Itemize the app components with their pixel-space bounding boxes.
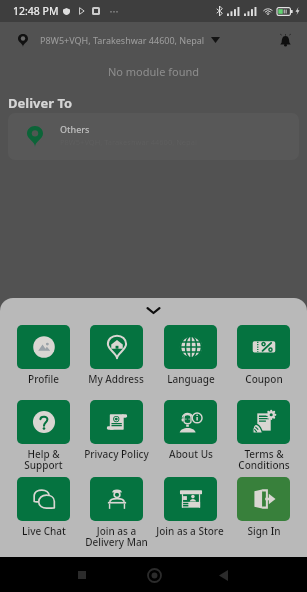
button[interactable]: About Us xyxy=(164,400,217,461)
button[interactable]: Back xyxy=(209,561,237,589)
button[interactable]: Others xyxy=(8,113,299,160)
button[interactable]: Join as a Store xyxy=(156,477,224,538)
staticText: Coupon xyxy=(245,372,283,386)
staticText: Profile xyxy=(28,372,59,386)
staticText: About Us xyxy=(169,447,213,461)
staticText: Others xyxy=(60,123,90,135)
staticText: Live Chat xyxy=(22,524,66,538)
staticText: Terms & Conditions xyxy=(238,447,290,472)
staticText: Join as a Store xyxy=(156,524,224,538)
staticText: No module found xyxy=(0,64,307,79)
button[interactable]: Profile xyxy=(17,325,70,386)
staticText: 12:48 PM xyxy=(13,4,59,18)
button[interactable]: Recents xyxy=(68,561,96,589)
button[interactable]: Sign In xyxy=(237,477,290,538)
staticText: My Address xyxy=(88,372,144,386)
staticText: Sign In xyxy=(247,524,281,538)
button[interactable]: Live Chat xyxy=(17,477,70,538)
button[interactable]: Join as a Delivery Man xyxy=(85,477,148,549)
staticText: P8W5+VQH, Tarakeshwar 44600, Nepal xyxy=(40,34,205,46)
button[interactable]: Language xyxy=(164,325,217,386)
button[interactable]: My Address xyxy=(88,325,144,386)
button[interactable]: Help & Support xyxy=(17,400,70,472)
button[interactable]: Notifications xyxy=(273,28,297,52)
staticText: Language xyxy=(167,372,215,386)
button[interactable]: Terms & Conditions xyxy=(237,400,290,472)
staticText: Privacy Policy xyxy=(84,447,149,461)
staticText: Deliver To xyxy=(8,94,73,112)
staticText: Join as a Delivery Man xyxy=(85,524,148,549)
button[interactable]: Home xyxy=(140,561,168,589)
button[interactable]: Location xyxy=(13,30,33,50)
button[interactable]: Collapse xyxy=(0,298,307,322)
staticText: Help & Support xyxy=(24,447,63,472)
button[interactable]: Privacy Policy xyxy=(84,400,149,461)
button[interactable]: Coupon xyxy=(237,325,290,386)
